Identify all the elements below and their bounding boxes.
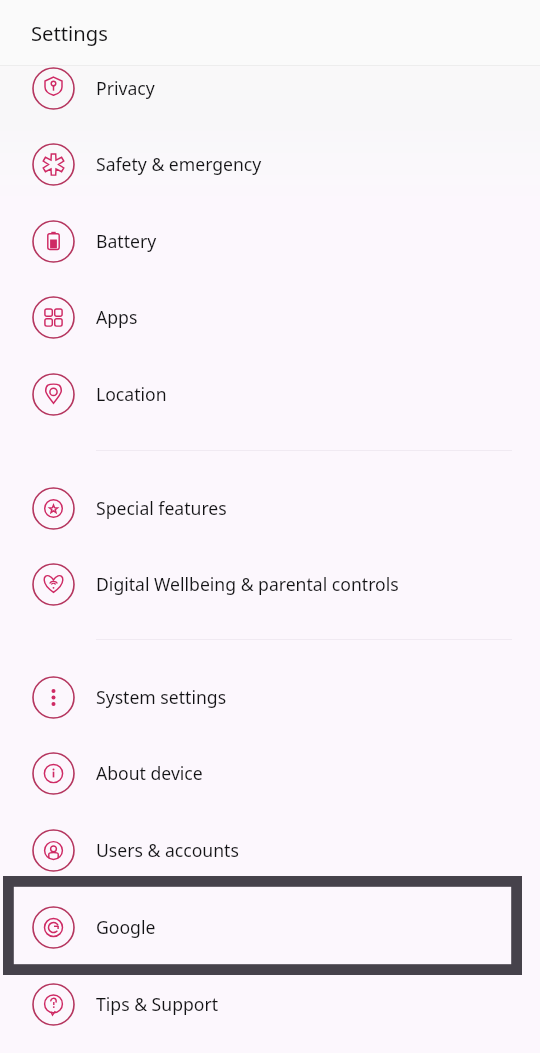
staticText: Location (96, 382, 167, 406)
other: Google selected (3, 876, 522, 975)
button[interactable]: Battery (0, 203, 540, 279)
button[interactable]: Safety & emergency (0, 126, 540, 202)
staticText: About device (96, 761, 203, 785)
staticText: Privacy (96, 76, 155, 100)
button[interactable]: Users & accounts (0, 812, 540, 888)
staticText: Users & accounts (96, 838, 239, 862)
staticText: Google (96, 915, 156, 939)
staticText: Safety & emergency (96, 152, 262, 176)
staticText: Special features (96, 496, 227, 520)
button[interactable]: Google (0, 889, 540, 965)
button[interactable]: Location (0, 356, 540, 432)
staticText: Battery (96, 229, 157, 253)
button[interactable]: System settings (0, 659, 540, 735)
staticText: System settings (96, 685, 227, 709)
button[interactable]: Special features (0, 470, 540, 546)
button[interactable]: Tips & Support (0, 966, 540, 1042)
button[interactable]: Digital Wellbeing & parental controls (0, 546, 540, 622)
button[interactable]: Privacy (0, 50, 540, 126)
button[interactable]: Apps (0, 279, 540, 355)
staticText: Tips & Support (96, 992, 219, 1016)
staticText: Apps (96, 305, 138, 329)
staticText: Settings (31, 19, 108, 47)
button[interactable]: About device (0, 735, 540, 811)
staticText: Digital Wellbeing & parental controls (96, 572, 399, 596)
